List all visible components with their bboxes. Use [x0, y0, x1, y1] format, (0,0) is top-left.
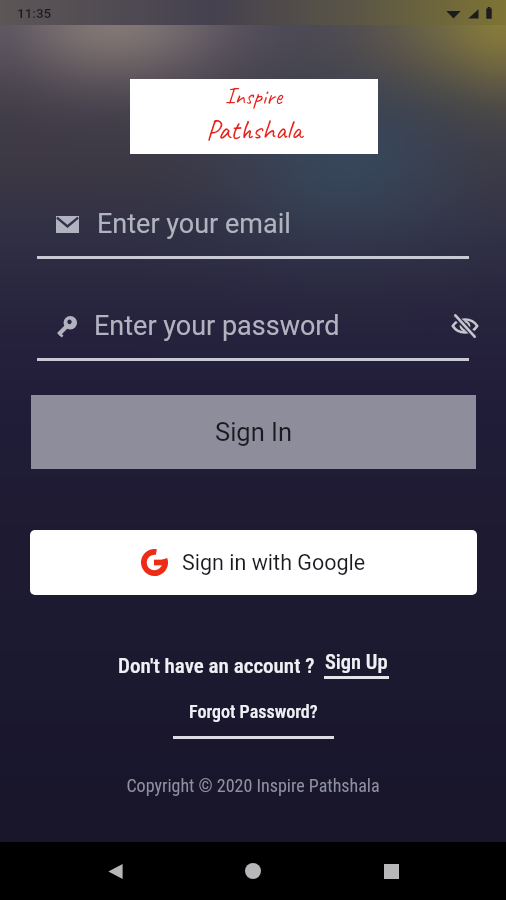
- staticText: Enter your email: [97, 208, 291, 240]
- button[interactable]: Enter your email: [56, 198, 506, 250]
- button[interactable]: Sign Up: [324, 650, 389, 679]
- button[interactable]: Show password: [445, 306, 485, 346]
- staticText: Pathshala: [206, 112, 303, 147]
- button[interactable]: Sign In: [31, 395, 476, 469]
- button[interactable]: Recents: [368, 848, 414, 894]
- button[interactable]: Forgot Password?: [0, 701, 506, 739]
- button[interactable]: Sign in with Google: [30, 530, 477, 595]
- staticText: 11:35: [17, 5, 52, 21]
- staticText: Inspire: [225, 81, 283, 111]
- staticText: Sign Up: [325, 650, 388, 674]
- button[interactable]: Back: [92, 848, 138, 894]
- staticText: Don't have an account ?: [118, 654, 315, 679]
- staticText: Enter your password: [94, 310, 340, 342]
- staticText: Sign In: [215, 417, 293, 447]
- button[interactable]: Home: [230, 848, 276, 894]
- staticText: Copyright © 2020 Inspire Pathshala: [0, 775, 506, 796]
- staticText: Forgot Password?: [189, 701, 318, 722]
- staticText: Sign in with Google: [182, 550, 366, 575]
